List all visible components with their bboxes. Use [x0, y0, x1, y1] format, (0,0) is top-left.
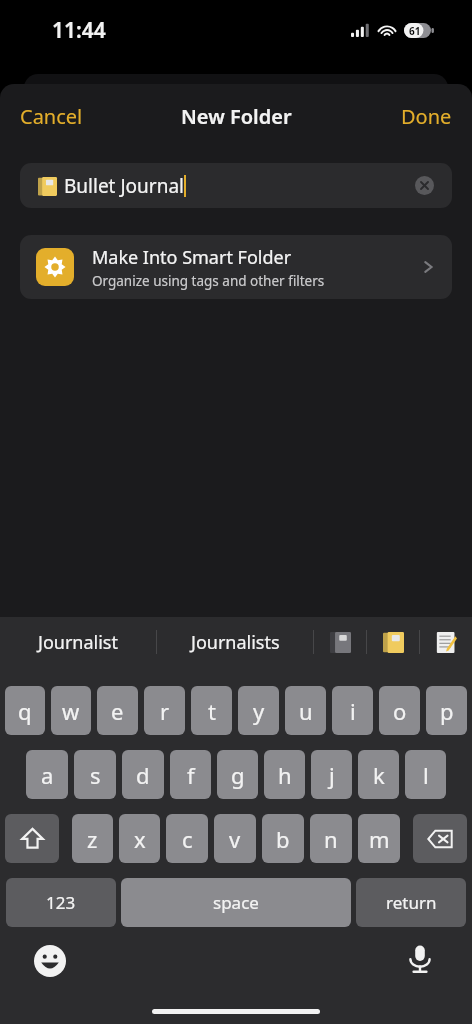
staticText: Make Into Smart Folder	[92, 245, 292, 270]
staticText: v	[229, 824, 241, 854]
staticText: 123	[46, 891, 76, 914]
button[interactable]: Backspace	[413, 814, 467, 863]
button[interactable]: return	[356, 878, 466, 927]
button[interactable]: o	[379, 686, 420, 735]
button[interactable]: t	[191, 686, 232, 735]
button[interactable]: Make Into Smart Folder	[20, 235, 452, 299]
staticText: f	[187, 760, 195, 790]
staticText: Cancel	[20, 103, 83, 130]
button[interactable]: s	[74, 750, 116, 799]
button[interactable]: f	[170, 750, 211, 799]
button[interactable]: Memo emoji	[420, 620, 472, 664]
button[interactable]: Book emoji	[314, 620, 366, 664]
staticText: r	[160, 696, 170, 726]
button[interactable]: l	[405, 750, 446, 799]
button[interactable]: k	[358, 750, 399, 799]
staticText: t	[208, 696, 216, 726]
button[interactable]: w	[51, 686, 91, 735]
button[interactable]: h	[264, 750, 305, 799]
button[interactable]: b	[262, 814, 304, 863]
staticText: Done	[401, 103, 452, 130]
staticText: s	[90, 760, 101, 790]
button[interactable]: e	[97, 686, 138, 735]
button[interactable]: Journalist	[0, 620, 156, 664]
staticText: x	[134, 824, 146, 854]
button[interactable]: Clear text	[415, 176, 434, 195]
staticText: Journalist	[38, 630, 118, 655]
staticText: return	[386, 891, 437, 914]
staticText: n	[324, 824, 338, 854]
button[interactable]: space	[121, 878, 351, 927]
button[interactable]: y	[238, 686, 279, 735]
button[interactable]: Dictation	[404, 943, 436, 975]
button[interactable]: m	[358, 814, 400, 863]
staticText: u	[299, 696, 313, 726]
staticText: 11:44	[52, 16, 106, 45]
button[interactable]: p	[426, 686, 467, 735]
button[interactable]: q	[5, 686, 45, 735]
staticText: Organize using tags and other filters	[92, 272, 325, 290]
staticText: i	[350, 696, 356, 726]
staticText: New Folder	[181, 103, 292, 130]
button[interactable]: i	[332, 686, 373, 735]
button[interactable]: Notebook emoji	[367, 620, 419, 664]
staticText: e	[111, 696, 124, 726]
button[interactable]: n	[310, 814, 352, 863]
button[interactable]: Journalists	[157, 620, 313, 664]
staticText: z	[87, 824, 98, 854]
button[interactable]: j	[311, 750, 352, 799]
staticText: d	[136, 760, 150, 790]
button[interactable]: r	[144, 686, 185, 735]
staticText: j	[329, 760, 335, 790]
staticText: 61	[409, 24, 421, 38]
staticText: a	[41, 760, 54, 790]
button[interactable]: u	[285, 686, 326, 735]
staticText: c	[182, 824, 193, 854]
staticText: m	[369, 824, 390, 854]
staticText: o	[393, 696, 407, 726]
button[interactable]: z	[72, 814, 113, 863]
staticText: b	[276, 824, 290, 854]
button[interactable]: Done	[381, 93, 472, 140]
button[interactable]: v	[214, 814, 256, 863]
staticText: y	[253, 696, 265, 726]
button[interactable]: Bullet Journal	[20, 163, 452, 208]
button[interactable]: x	[119, 814, 160, 863]
staticText: h	[278, 760, 292, 790]
button[interactable]: g	[217, 750, 258, 799]
staticText: Journalists	[191, 630, 280, 655]
button[interactable]: 123	[6, 878, 116, 927]
button[interactable]: Emoji keyboard	[34, 945, 66, 977]
staticText: p	[440, 696, 454, 726]
button[interactable]: c	[166, 814, 208, 863]
staticText: Bullet Journal	[64, 173, 184, 199]
button[interactable]: a	[26, 750, 68, 799]
button[interactable]: Cancel	[0, 93, 103, 140]
staticText: l	[423, 760, 429, 790]
staticText: q	[18, 696, 32, 726]
staticText: space	[213, 891, 259, 914]
button[interactable]: d	[122, 750, 164, 799]
button[interactable]: Shift	[5, 814, 59, 863]
staticText: k	[373, 760, 385, 790]
staticText: w	[62, 696, 80, 726]
staticText: g	[231, 760, 245, 790]
